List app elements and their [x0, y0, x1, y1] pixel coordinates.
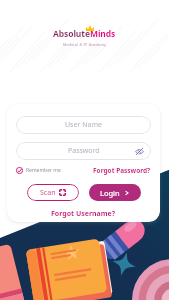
button[interactable]: Login — [89, 184, 141, 201]
button[interactable]: Password — [16, 142, 151, 160]
staticText: Medical & IT Academy — [63, 42, 107, 47]
button[interactable]: User Name — [16, 116, 151, 134]
staticText: Scan — [40, 188, 56, 198]
staticText: Login — [100, 188, 120, 198]
button[interactable]: Scan — [27, 184, 79, 201]
button[interactable]: Show password — [135, 147, 144, 156]
staticText: Forgot Password? — [93, 166, 151, 175]
button[interactable]: Forgot Username? — [48, 208, 119, 220]
staticText: Forgot Username? — [51, 209, 116, 219]
staticText: User Name — [65, 120, 102, 130]
button[interactable]: Remember me — [16, 167, 61, 174]
staticText: Absolute — [53, 28, 90, 40]
staticText: Remember me — [26, 167, 61, 174]
staticText: Password — [68, 146, 100, 156]
staticText: Minds — [90, 28, 116, 40]
button[interactable]: Forgot Password? — [93, 166, 151, 175]
